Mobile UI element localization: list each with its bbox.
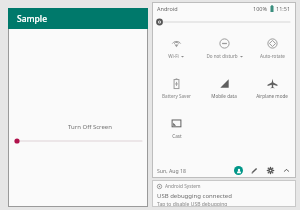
staticText: Mobile data xyxy=(211,93,237,99)
staticText: Sample xyxy=(17,13,48,25)
button[interactable]: Brightness xyxy=(152,15,296,29)
staticText: Cast xyxy=(172,133,182,139)
button[interactable]: Edit xyxy=(250,166,259,175)
button[interactable]: Wi-Fi xyxy=(152,32,200,72)
button[interactable]: User xyxy=(234,166,243,175)
staticText: 11:51 xyxy=(276,5,291,12)
staticText: Do not disturb xyxy=(206,53,238,59)
staticText: Sun, Aug 18 xyxy=(157,167,186,174)
staticText: Wi-Fi xyxy=(168,53,179,59)
button[interactable]: Settings xyxy=(266,166,275,175)
button[interactable]: Auto-rotate xyxy=(248,32,296,72)
staticText: USB debugging connected xyxy=(157,192,232,200)
button[interactable]: Do not disturb xyxy=(200,32,248,72)
staticText: Turn Off Screen xyxy=(32,123,148,131)
button[interactable]: Sample xyxy=(8,8,148,29)
button[interactable]: Airplane mode xyxy=(248,72,296,112)
staticText: Tap to disable USB debugging xyxy=(157,201,228,207)
button[interactable]: Cast xyxy=(152,112,200,152)
button[interactable]: Screen timeout slider xyxy=(8,135,148,147)
button[interactable]: Android System xyxy=(152,180,296,207)
staticText: Android xyxy=(157,5,178,12)
button[interactable]: Battery Saver xyxy=(152,72,200,112)
button[interactable]: Mobile data xyxy=(200,72,248,112)
staticText: 100% xyxy=(253,5,268,12)
button[interactable]: Collapse xyxy=(282,166,291,175)
staticText: Auto-rotate xyxy=(260,53,285,59)
staticText: Airplane mode xyxy=(256,93,288,99)
staticText: Android System xyxy=(165,183,201,190)
staticText: Battery Saver xyxy=(162,93,191,99)
